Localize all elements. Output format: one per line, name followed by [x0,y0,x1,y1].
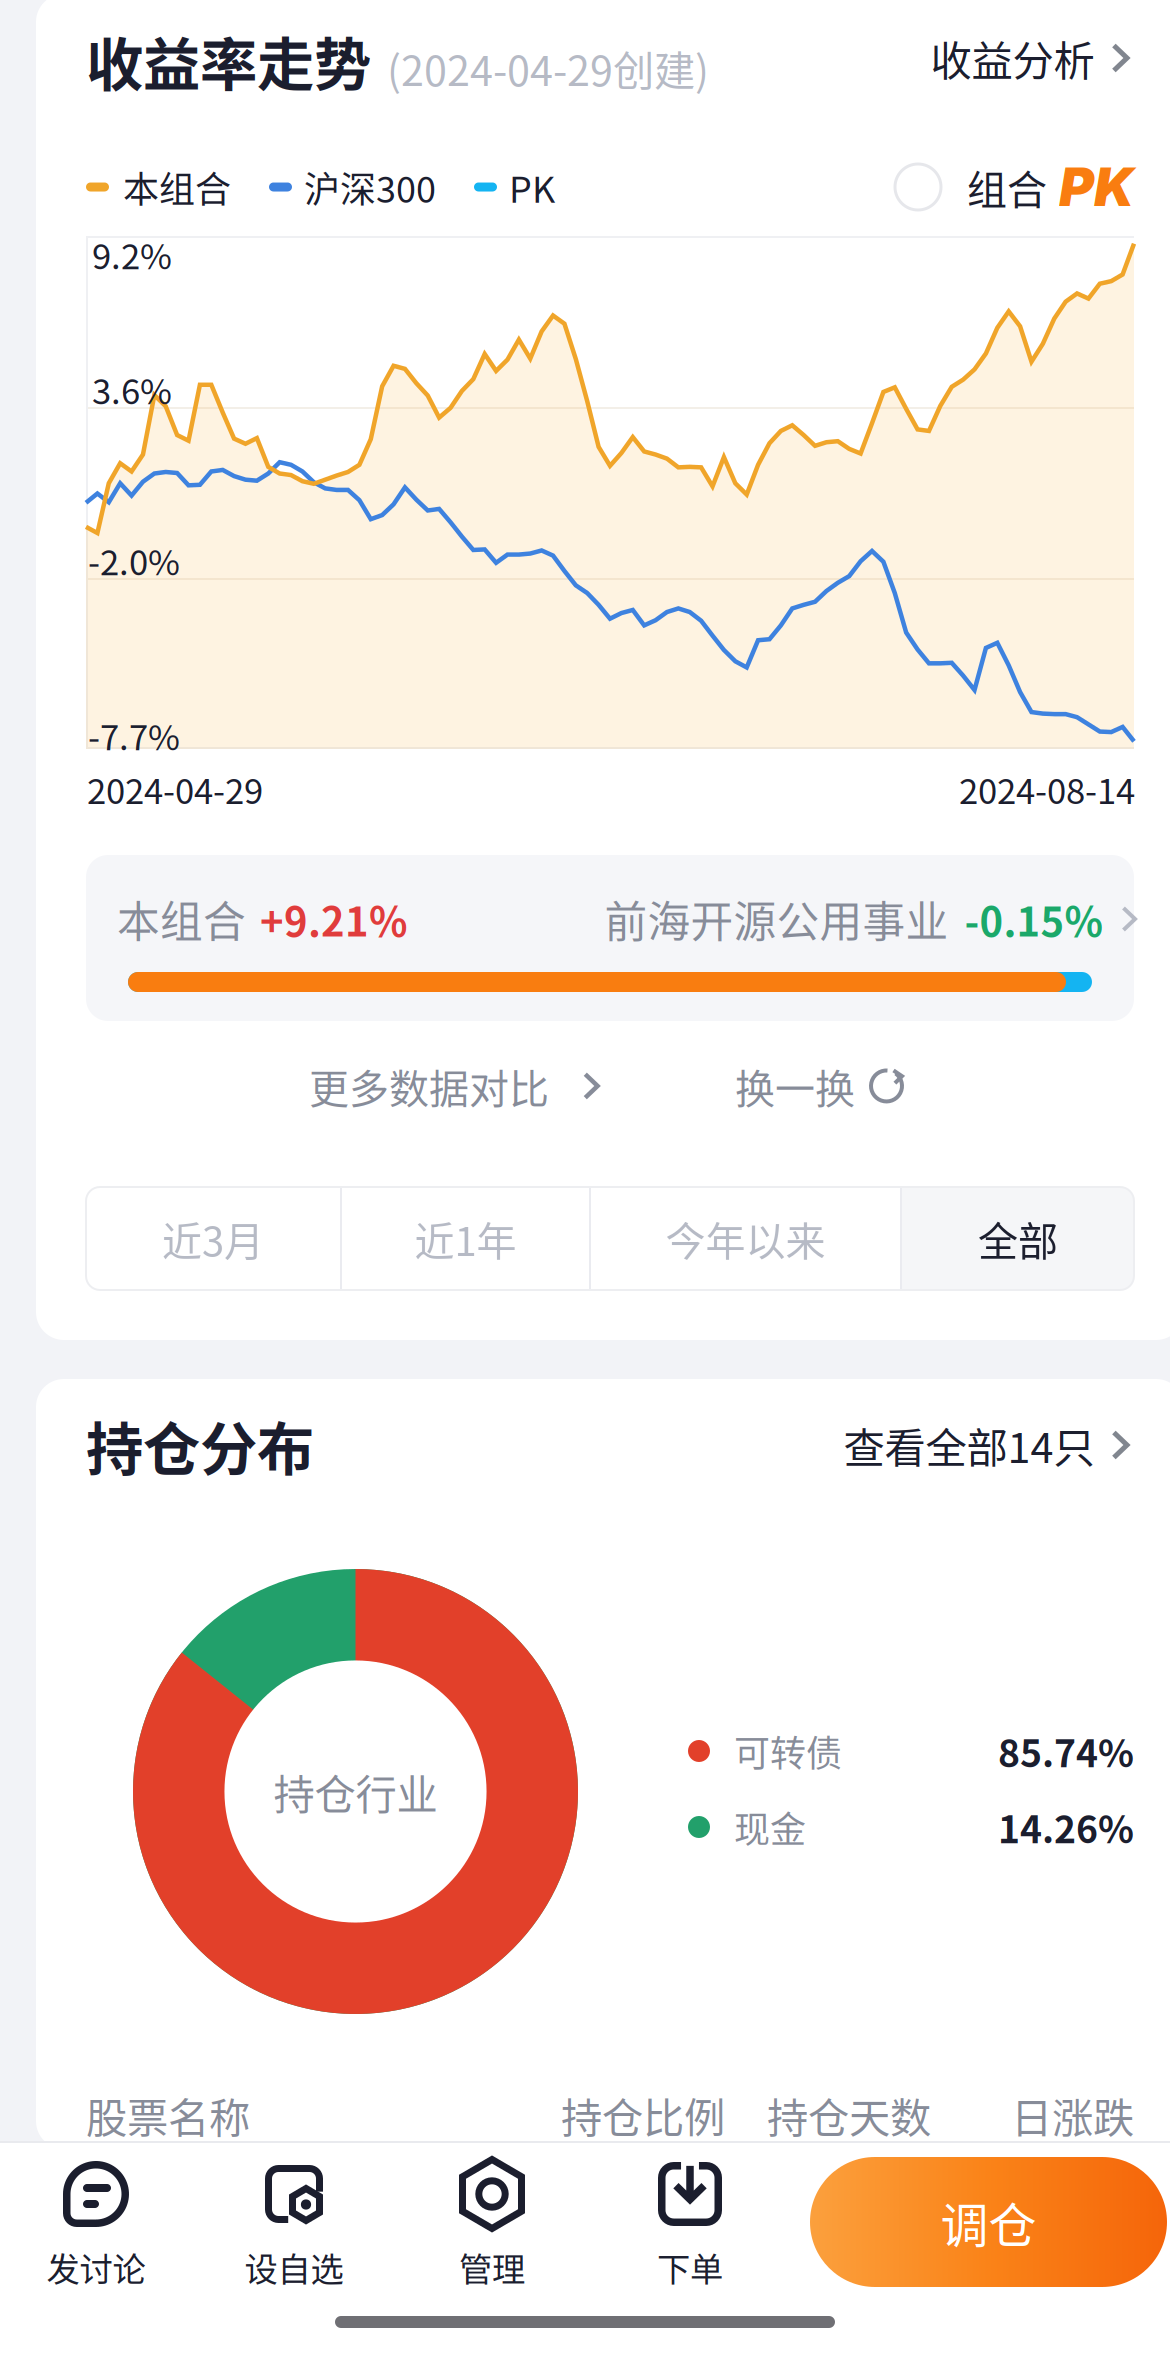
button[interactable]: 换一换 [725,1043,914,1129]
staticText: PK [509,161,555,213]
button[interactable]: 收益分析 [928,14,1134,102]
staticText: 今年以来 [665,1209,825,1267]
staticText: 发讨论 [46,2243,145,2291]
button[interactable]: 查看全部14只 [841,1401,1134,1489]
staticText: 持仓分布 [86,1403,314,1486]
staticText: 持仓天数 [767,2085,931,2145]
staticText: 本组合 [123,161,231,213]
staticText: 调仓 [940,2187,1036,2257]
staticText: -0.15% [964,890,1103,948]
staticText: 管理 [459,2243,525,2291]
staticText: 85.74% [998,1724,1134,1778]
staticText: 下单 [657,2243,723,2291]
staticText: 近3月 [162,1209,264,1267]
staticText: 设自选 [244,2243,343,2291]
button[interactable]: 下单 [600,2147,780,2297]
button[interactable]: 全部 [902,1187,1134,1290]
button[interactable]: 近3月 [86,1187,340,1290]
button[interactable]: 设自选 [204,2147,384,2297]
staticText: 现金 [734,1801,806,1853]
staticText: 股票名称 [86,2085,250,2145]
staticText: 收益率走势 [86,19,371,102]
staticText: 换一换 [735,1057,855,1115]
staticText: +9.21% [260,890,408,948]
staticText: 3.6% [92,364,172,414]
staticText: 更多数据对比 [309,1057,549,1115]
staticText: 近1年 [414,1209,516,1267]
button[interactable]: 组合 [895,149,1134,225]
button[interactable]: 发讨论 [6,2147,186,2297]
staticText: 本组合 [117,888,246,950]
button[interactable]: 今年以来 [591,1187,900,1290]
staticText: 2024-08-14 [959,764,1135,814]
staticText: (2024-04-29创建) [387,38,709,98]
staticText: 全部 [978,1209,1058,1267]
button[interactable]: 近1年 [342,1187,589,1290]
staticText: 收益分析 [930,28,1094,88]
staticText: 持仓比例 [561,2085,725,2145]
staticText: -2.0% [88,535,180,585]
staticText: 组合 [967,158,1047,216]
staticText: 可转债 [734,1725,842,1777]
button[interactable]: 调仓 [810,2157,1167,2287]
staticText: -7.7% [88,710,180,760]
staticText: 日涨跌 [1011,2085,1134,2145]
staticText: 持仓行业 [273,1762,437,1821]
staticText: 14.26% [998,1800,1134,1854]
staticText: 前海开源公用事业 [604,888,948,950]
button[interactable]: 更多数据对比 [299,1043,612,1129]
staticText: 沪深300 [304,161,436,213]
button[interactable]: 管理 [402,2147,582,2297]
staticText: 9.2% [92,229,172,279]
staticText: 2024-04-29 [87,764,263,814]
staticText: PK [1059,155,1134,219]
staticText: 查看全部14只 [843,1415,1094,1475]
